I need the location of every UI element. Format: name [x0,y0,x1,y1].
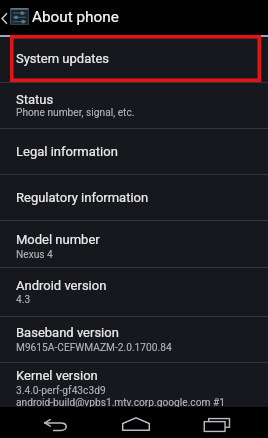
button[interactable]: Back [34,407,78,438]
staticText: System updates [16,51,110,66]
staticText: 3.4.0-perf-gf43c3d9 [16,385,106,397]
button[interactable]: Baseband version [0,317,268,363]
staticText: Baseband version [16,325,119,340]
button[interactable]: Kernel version [0,363,268,407]
button[interactable]: Home [112,407,158,438]
staticText: About phone [32,8,119,26]
staticText: Status [16,92,54,107]
button[interactable]: Regulatory information [0,175,268,221]
button[interactable]: Model number [0,221,268,268]
button[interactable]: Status [0,83,268,129]
button[interactable]: Navigate up [0,0,31,35]
staticText: Legal information [16,144,118,159]
staticText: Kernel version [16,368,98,383]
staticText: android-build@vpbs1.mtv.corp.google.com … [16,397,225,407]
staticText: 4.3 [16,294,31,306]
staticText: Regulatory information [16,190,149,205]
button[interactable]: Android version [0,268,268,317]
staticText: Nexus 4 [16,249,53,261]
staticText: Android version [16,278,107,293]
staticText: Model number [16,232,100,247]
button[interactable]: System updates [0,37,268,83]
staticText: M9615A-CEFWMAZM-2.0.1700.84 [16,342,172,354]
button[interactable]: Legal information [0,129,268,175]
button[interactable]: Recent apps [194,407,240,438]
staticText: Phone number, signal, etc. [16,107,135,119]
